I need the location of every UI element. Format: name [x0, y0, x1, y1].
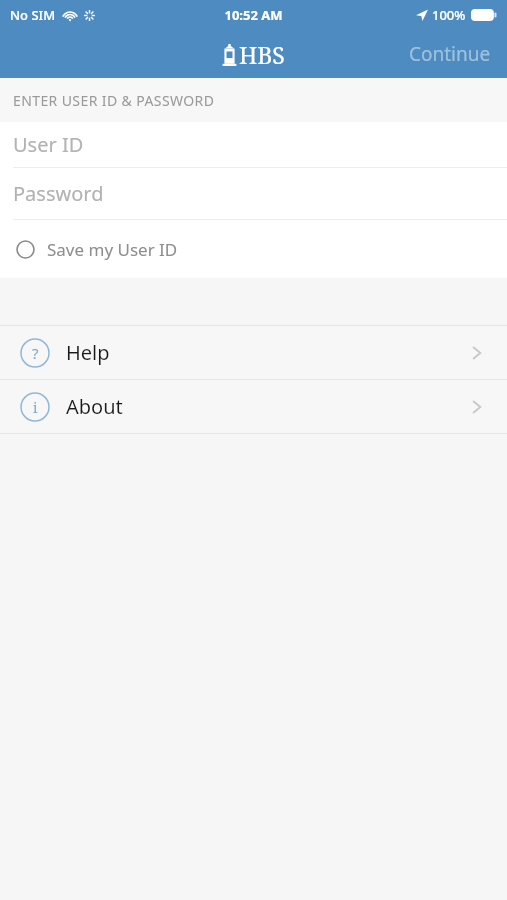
staticText: 100%	[432, 6, 466, 24]
staticText: 10:52 AM	[224, 6, 283, 24]
staticText: HBS	[239, 39, 285, 70]
staticText: Password	[13, 180, 104, 207]
button[interactable]: Password	[0, 168, 507, 219]
staticText: Help	[66, 339, 110, 366]
button[interactable]: User ID	[0, 122, 507, 167]
staticText: About	[66, 393, 123, 420]
staticText: i	[33, 398, 38, 417]
staticText: No SIM	[10, 6, 56, 24]
staticText: Continue	[409, 41, 491, 67]
staticText: Save my User ID	[47, 238, 178, 261]
button[interactable]: i	[0, 380, 507, 433]
button[interactable]: Save my User ID	[0, 220, 507, 278]
staticText: ?	[32, 343, 39, 363]
staticText: User ID	[13, 131, 84, 158]
button[interactable]: ?	[0, 326, 507, 379]
button[interactable]: Continue	[393, 31, 507, 77]
staticText: ENTER USER ID & PASSWORD	[13, 91, 215, 110]
